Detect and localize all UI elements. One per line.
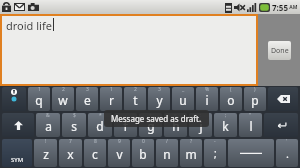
staticText: k [222,118,229,134]
staticText: 1 [38,87,41,93]
button[interactable]: % [196,87,218,111]
button[interactable]: 7 [59,139,82,167]
staticText: ; [214,146,217,160]
staticText: . [286,146,289,161]
staticText: l [249,118,253,134]
staticText: 7:55 [272,2,288,13]
button[interactable]: & [36,113,60,137]
staticText: " [249,113,252,119]
button[interactable]: 9 [108,139,130,167]
button[interactable]: Backspace [268,87,298,111]
button[interactable]: 3 [76,87,98,111]
staticText: b [139,146,147,162]
button[interactable]: 0 [132,139,154,167]
staticText: _ [182,87,185,93]
button[interactable]: " [239,113,262,137]
staticText: % [205,87,210,93]
staticText: t [133,92,138,108]
staticText: 0 [142,139,145,145]
staticText: ; [225,113,227,119]
button[interactable]: 3 [148,87,170,111]
staticText: 1 [110,87,113,93]
staticText: d [96,118,104,134]
staticText: & [46,113,50,119]
button[interactable]: - [204,139,226,167]
staticText: + [149,113,152,119]
button[interactable]: Shift [2,113,34,137]
button[interactable]: = [164,113,187,137]
staticText: s [71,118,77,134]
staticText: u [179,92,187,108]
staticText: droid life [6,18,52,33]
button[interactable]: * [88,113,112,137]
staticText: n [163,146,171,162]
staticText: z [43,146,49,162]
staticText: m [185,146,197,162]
staticText: ( [230,87,232,93]
staticText: $ [73,113,76,119]
staticText: ! [45,139,47,145]
button[interactable]: droid life [2,16,256,84]
button[interactable]: _ [172,87,194,111]
staticText: j [199,118,203,134]
button[interactable]: 1 [28,87,50,111]
button[interactable]: Done [268,41,291,60]
staticText: o [227,92,235,108]
staticText: Done [271,46,289,56]
staticText: 7 [69,139,72,145]
staticText: p [251,92,259,108]
staticText: - [214,139,216,145]
button[interactable]: Input method [2,87,26,111]
staticText: 3 [158,87,161,93]
staticText: * [99,113,102,119]
button[interactable]: ( [220,87,242,111]
button[interactable]: ; [214,113,237,137]
button[interactable]: : [189,113,212,137]
staticText: y [156,92,163,108]
staticText: r [109,92,114,108]
staticText: - [125,113,127,119]
button[interactable]: Enter [264,113,298,137]
staticText: ' [286,139,288,145]
button[interactable]: SYM [2,139,32,167]
staticText: / [166,139,168,145]
staticText: ) [254,87,256,93]
button[interactable]: + [139,113,162,137]
staticText: f [123,118,128,134]
staticText: e [84,92,91,108]
staticText: AM [288,4,298,11]
button[interactable]: 8 [84,139,106,167]
button[interactable]: ! [34,139,57,167]
staticText: 8 [94,139,97,145]
staticText: Message saved as draft. [111,113,202,124]
button[interactable]: - [114,113,137,137]
staticText: w [58,92,68,108]
staticText: q [35,92,43,108]
staticText: 2 [134,87,137,93]
button[interactable]: 2 [124,87,146,111]
button[interactable]: $ [62,113,86,137]
staticText: c [92,146,98,162]
button[interactable]: ) [244,87,266,111]
staticText: = [174,113,177,119]
button[interactable]: ? [180,139,202,167]
staticText: 9 [118,139,121,145]
staticText: i [205,92,209,108]
button[interactable]: 1 [100,87,122,111]
button[interactable]: Space [228,139,274,167]
staticText: 3 [86,87,89,93]
button[interactable]: ' [276,139,298,167]
staticText: 2 [62,87,65,93]
staticText: h [172,118,180,134]
staticText: x [67,146,74,162]
button[interactable]: 2 [52,87,74,111]
staticText: ? [190,139,193,145]
button[interactable]: / [156,139,178,167]
staticText: a [45,118,52,134]
staticText: SYM [11,156,24,164]
staticText: v [116,146,123,162]
staticText: g [147,118,155,134]
